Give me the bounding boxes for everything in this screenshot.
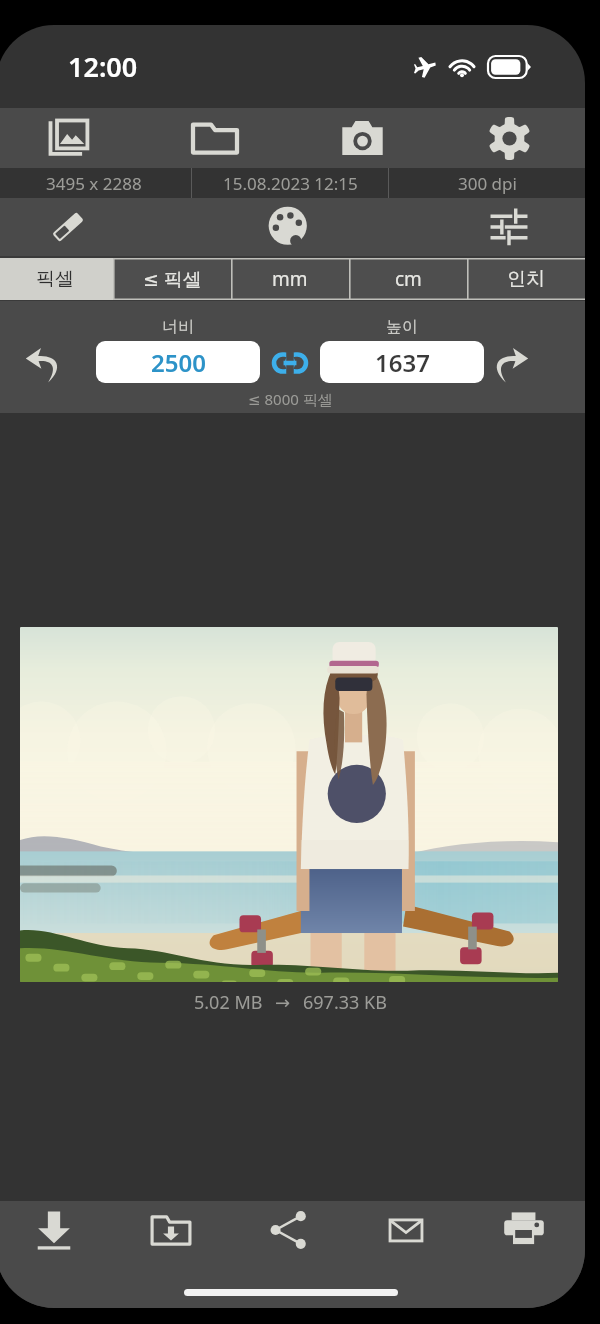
button[interactable]: Print <box>489 1201 559 1259</box>
staticText: 너비 <box>162 317 194 337</box>
staticText: ≤ 8000 픽셀 <box>248 389 333 409</box>
staticText: 5.02 MB <box>194 990 263 1015</box>
button[interactable]: Lock aspect ratio <box>260 341 320 385</box>
button[interactable]: Undo <box>14 333 76 395</box>
staticText: ≤ 픽셀 <box>143 266 202 292</box>
button[interactable]: cm <box>349 258 467 300</box>
button[interactable]: Gallery <box>33 108 103 168</box>
button[interactable]: Folder <box>180 108 250 168</box>
staticText: 1637 <box>375 346 430 379</box>
button[interactable]: mm <box>231 258 349 300</box>
button[interactable]: Adjust <box>474 198 544 256</box>
staticText: mm <box>272 266 308 292</box>
button[interactable]: 인치 <box>467 258 585 300</box>
button[interactable]: Redo <box>478 333 540 395</box>
button[interactable]: Download <box>19 1201 89 1259</box>
staticText: 인치 <box>507 267 545 291</box>
staticText: 높이 <box>386 317 418 337</box>
button[interactable]: Eraser <box>33 198 103 256</box>
staticText: 15.08.2023 12:15 <box>223 172 358 195</box>
staticText: 3495 x 2288 <box>46 172 142 195</box>
staticText: 픽셀 <box>36 267 74 291</box>
staticText: 300 dpi <box>458 172 517 195</box>
button[interactable]: Camera <box>327 108 397 168</box>
button[interactable]: Email <box>371 1201 441 1259</box>
staticText: 12:00 <box>68 48 138 85</box>
button[interactable]: 1637 <box>320 341 484 383</box>
staticText: cm <box>395 266 422 292</box>
staticText: 2500 <box>151 346 206 379</box>
button[interactable]: Save to folder <box>136 1201 206 1259</box>
button[interactable]: ≤ 픽셀 <box>113 258 231 300</box>
button[interactable]: Share <box>254 1201 324 1259</box>
staticText: → <box>275 992 291 1013</box>
button[interactable]: Palette <box>254 198 324 256</box>
button[interactable]: 픽셀 <box>0 258 113 300</box>
staticText: 697.33 KB <box>303 990 387 1015</box>
button[interactable]: Settings <box>474 108 544 168</box>
button[interactable]: 2500 <box>96 341 260 383</box>
